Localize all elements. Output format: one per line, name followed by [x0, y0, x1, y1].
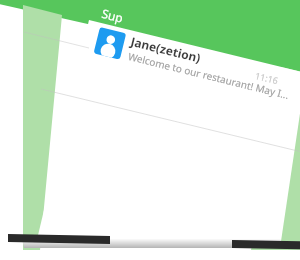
- button[interactable]: Sup messaging app screen mockup: [0, 0, 300, 260]
